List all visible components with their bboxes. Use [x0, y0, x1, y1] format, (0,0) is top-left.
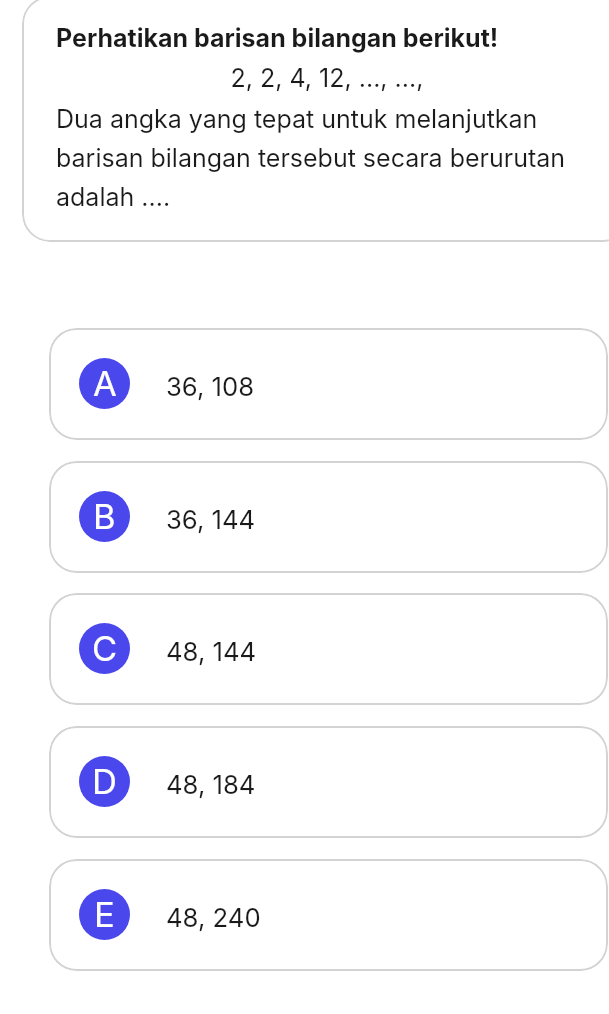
- button[interactable]: A: [49, 328, 608, 440]
- staticText: E: [94, 894, 115, 936]
- staticText: 48, 240: [166, 902, 261, 933]
- staticText: B: [93, 496, 116, 538]
- staticText: A: [93, 363, 117, 405]
- button[interactable]: D: [49, 726, 608, 838]
- staticText: Dua angka yang tepat untuk melanjutkan b…: [56, 97, 598, 214]
- staticText: 48, 184: [166, 769, 256, 800]
- staticText: D: [92, 761, 117, 803]
- staticText: C: [92, 628, 118, 670]
- button[interactable]: E: [49, 859, 608, 971]
- staticText: 36, 144: [166, 504, 256, 535]
- staticText: 36, 108: [166, 371, 255, 402]
- staticText: 48, 144: [166, 636, 257, 667]
- button[interactable]: C: [49, 593, 608, 705]
- button[interactable]: B: [49, 461, 608, 573]
- staticText: Perhatikan barisan bilangan berikut!: [56, 15, 499, 54]
- staticText: 2, 2, 4, 12, ..., ...,: [56, 55, 598, 94]
